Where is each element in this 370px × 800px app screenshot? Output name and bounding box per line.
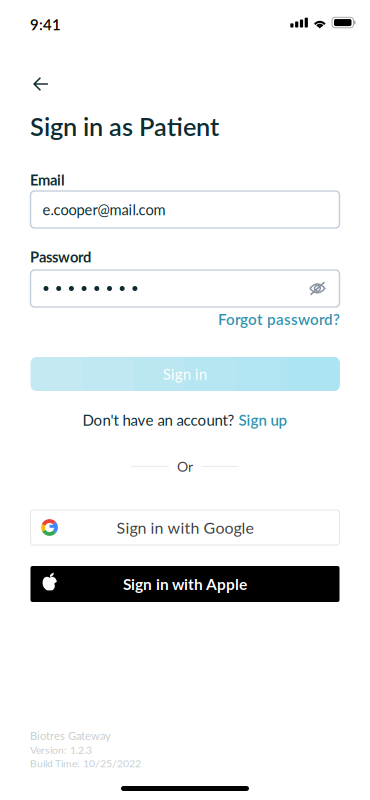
staticText: Sign up	[238, 411, 287, 429]
staticText: Sign in with Apple	[123, 575, 247, 593]
button[interactable]: Sign in with Google	[30, 510, 339, 545]
staticText: Sign in as Patient	[30, 111, 219, 141]
button[interactable]: Forgot password?	[218, 310, 340, 328]
staticText: Sign in	[163, 365, 207, 383]
staticText: Or	[177, 458, 193, 475]
staticText: Version: 1.2.3	[30, 743, 92, 756]
staticText: e.cooper@mail.com	[42, 201, 165, 218]
button[interactable]: Back	[22, 68, 60, 100]
staticText: Email	[30, 171, 65, 189]
button[interactable]: Sign up	[238, 411, 287, 429]
staticText: Password	[30, 248, 91, 266]
staticText: Biotres Gateway	[30, 729, 111, 742]
staticText: Build Time: 10/25/2022	[30, 757, 141, 769]
staticText: 9:41	[30, 15, 61, 33]
button[interactable]: Sign in	[30, 357, 339, 391]
button[interactable]: Show password	[302, 272, 332, 304]
staticText: Sign in with Google	[116, 518, 253, 537]
staticText: Don't have an account?	[82, 411, 234, 429]
staticText: Forgot password?	[218, 310, 340, 328]
button[interactable]: Sign in with Apple	[30, 566, 339, 602]
